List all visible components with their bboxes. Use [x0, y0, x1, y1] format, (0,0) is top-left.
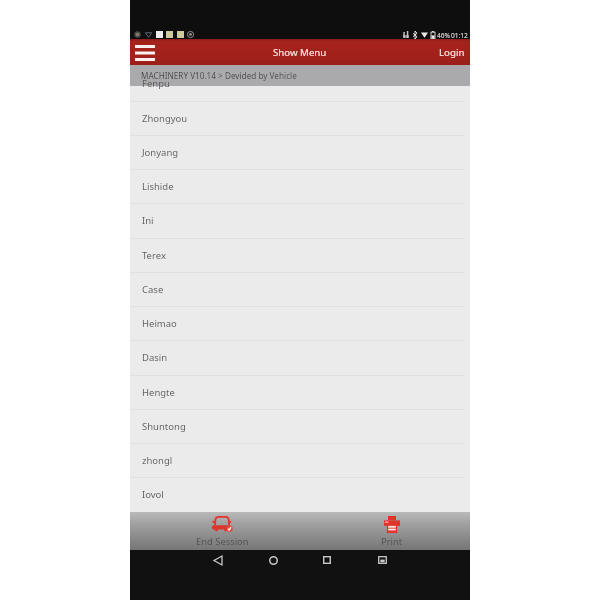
button[interactable]: Ini	[130, 204, 470, 238]
button[interactable]: Heimao	[130, 307, 470, 341]
staticText: Zhongyou	[142, 112, 188, 125]
button[interactable]: Hengte	[130, 376, 470, 410]
button[interactable]: Shuntong	[130, 410, 470, 444]
button[interactable]: Lishide	[130, 170, 470, 204]
staticText: Print	[381, 535, 403, 548]
button[interactable]: Case	[130, 273, 470, 307]
staticText: Login	[439, 46, 465, 59]
staticText: Lishide	[142, 180, 174, 193]
button[interactable]: Fenpu	[130, 67, 470, 101]
button[interactable]: Zhongyou	[130, 102, 470, 136]
button[interactable]: Iovol	[130, 478, 470, 512]
staticText: MACHINERY V10.14 > Devided by Vehicle	[141, 70, 297, 81]
staticText: Ini	[142, 214, 154, 227]
staticText: Terex	[142, 249, 166, 262]
button[interactable]: zhongl	[130, 444, 470, 478]
staticText: Jonyang	[142, 146, 179, 159]
staticText: 01:12	[451, 31, 468, 40]
button[interactable]: Screenshot	[371, 550, 393, 570]
staticText: Hengte	[142, 386, 175, 399]
staticText: Iovol	[142, 488, 164, 501]
button[interactable]: End Session	[179, 512, 265, 550]
staticText: Fenpu	[142, 77, 170, 90]
staticText: End Session	[196, 535, 249, 548]
button[interactable]: Dasin	[130, 341, 470, 375]
button[interactable]: Print	[349, 512, 435, 550]
button[interactable]: Jonyang	[130, 136, 470, 170]
button[interactable]: Open navigation menu	[130, 39, 162, 65]
button[interactable]: Home	[262, 550, 284, 570]
staticText: Shuntong	[142, 420, 186, 433]
staticText: Case	[142, 283, 164, 296]
staticText: Show Menu	[273, 46, 327, 59]
button[interactable]: Recent apps	[316, 550, 338, 570]
staticText: Heimao	[142, 317, 177, 330]
button[interactable]: Login	[429, 39, 470, 65]
button[interactable]: Terex	[130, 239, 470, 273]
staticText: 46%	[437, 31, 451, 40]
button[interactable]: Back	[207, 550, 229, 570]
staticText: zhongl	[142, 454, 173, 467]
staticText: Dasin	[142, 351, 168, 364]
